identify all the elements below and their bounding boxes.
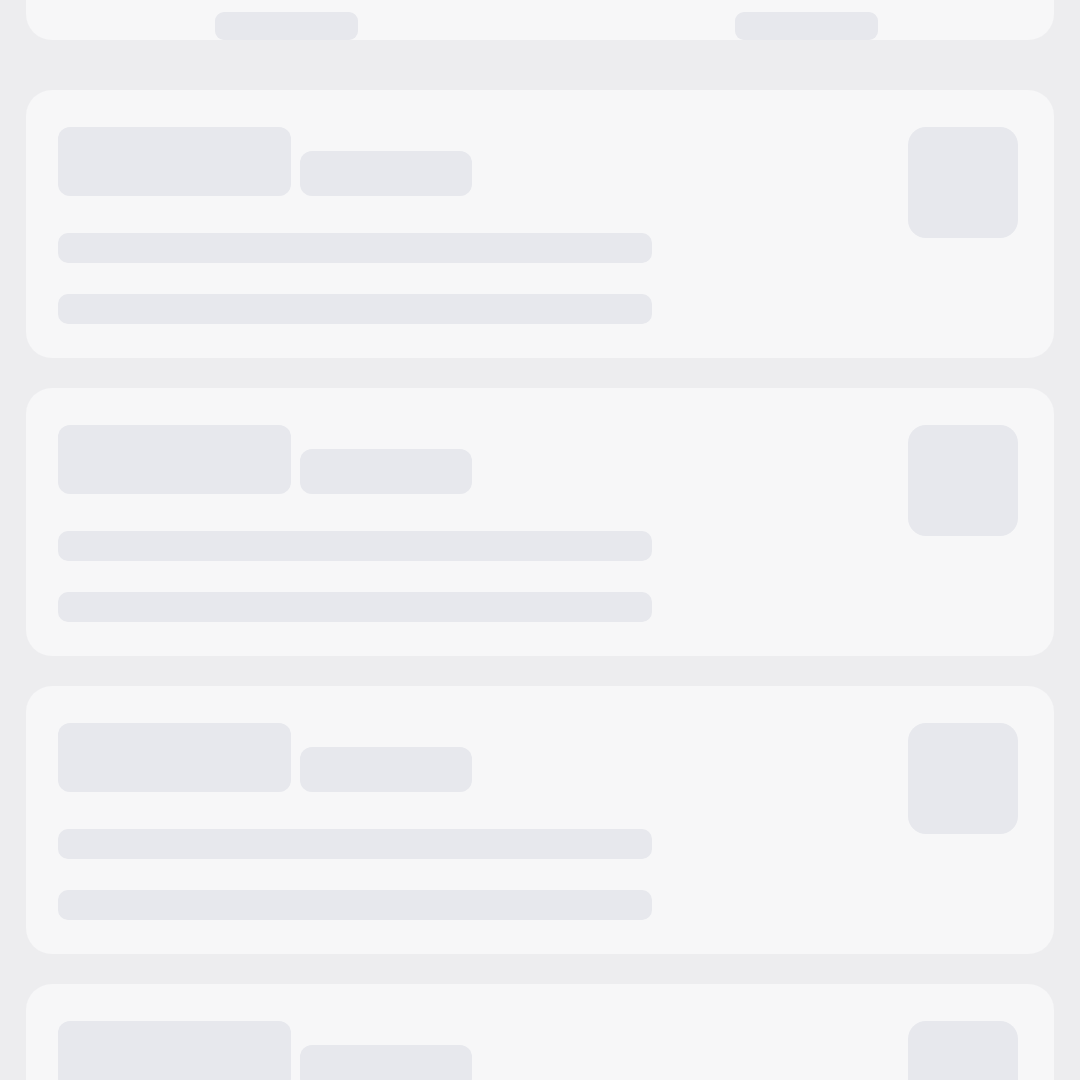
- button[interactable]: Loading item: [26, 0, 1054, 40]
- button[interactable]: Loading item: [26, 90, 1054, 358]
- button[interactable]: Loading item: [26, 686, 1054, 954]
- button[interactable]: Loading item: [26, 984, 1054, 1080]
- button[interactable]: Loading item: [26, 388, 1054, 656]
